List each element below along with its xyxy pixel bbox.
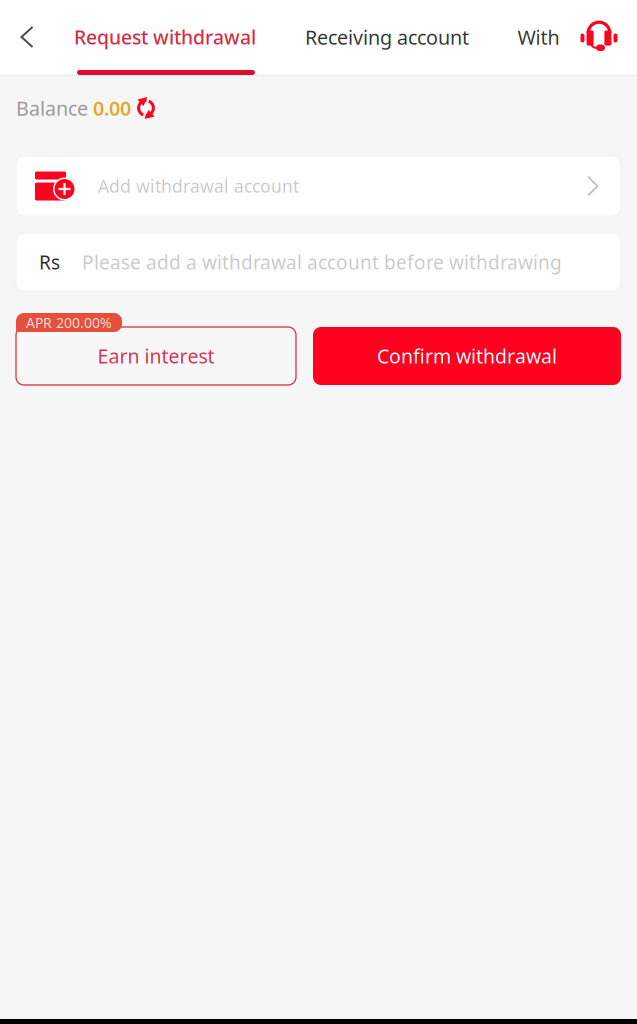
staticText: Rs xyxy=(39,249,60,275)
staticText: Confirm withdrawal xyxy=(377,343,557,369)
staticText: APR 200.00% xyxy=(26,313,112,332)
button[interactable]: Back xyxy=(0,0,54,74)
button[interactable]: Confirm withdrawal xyxy=(313,327,621,385)
staticText: 0.00 xyxy=(93,95,131,121)
staticText: Request withdrawal xyxy=(74,24,256,50)
button[interactable]: Request withdrawal xyxy=(54,0,276,74)
staticText: Balance xyxy=(16,95,93,121)
button[interactable]: Customer support xyxy=(577,14,621,52)
staticText: Please add a withdrawal account before w… xyxy=(82,249,562,275)
staticText: With xyxy=(517,24,559,50)
button[interactable]: Refresh balance xyxy=(131,94,161,122)
button[interactable]: With xyxy=(498,0,579,74)
staticText: Add withdrawal account xyxy=(98,174,299,198)
button[interactable]: Receiving account xyxy=(276,0,498,74)
staticText: Earn interest xyxy=(97,343,214,369)
button[interactable]: Add withdrawal account xyxy=(0,156,637,216)
button[interactable]: Earn interest xyxy=(16,327,296,385)
staticText: Receiving account xyxy=(305,24,469,50)
